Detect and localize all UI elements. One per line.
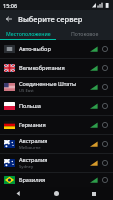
button[interactable]: Add to favourites xyxy=(101,140,109,148)
staticText: Sydney xyxy=(19,164,34,170)
button[interactable]: Recent apps xyxy=(75,187,113,200)
button[interactable]: Back xyxy=(0,10,18,28)
staticText: US East xyxy=(19,88,34,94)
staticText: Соединенные Штаты xyxy=(19,80,77,88)
button[interactable]: Польша xyxy=(0,97,113,115)
button[interactable]: Add to favourites xyxy=(101,102,109,110)
button[interactable]: Авто-выбор xyxy=(0,40,113,58)
staticText: Потоковое xyxy=(71,30,99,37)
staticText: Германия xyxy=(19,121,46,129)
staticText: Австралия xyxy=(19,137,48,145)
staticText: Выберите сервер xyxy=(18,14,83,24)
staticText: Австралия xyxy=(19,156,48,164)
button[interactable]: Add to favourites xyxy=(101,45,109,53)
staticText: Авто-выбор xyxy=(19,45,51,53)
button[interactable]: Бразилия xyxy=(0,173,113,187)
staticText: Польша xyxy=(19,102,41,110)
button[interactable]: Великобритания xyxy=(0,59,113,77)
button[interactable]: Местоположение xyxy=(0,28,56,39)
staticText: Местоположение xyxy=(6,30,51,37)
staticText: 15:06 xyxy=(3,2,18,9)
button[interactable]: Add to favourites xyxy=(101,176,109,184)
button[interactable]: Австралия xyxy=(0,154,113,172)
staticText: Великобритания xyxy=(19,64,65,72)
button[interactable]: Add to favourites xyxy=(101,121,109,129)
button[interactable]: Соединенные Штаты xyxy=(0,78,113,96)
button[interactable]: Австралия xyxy=(0,135,113,153)
staticText: Melbourne xyxy=(19,145,41,151)
button[interactable]: Add to favourites xyxy=(101,83,109,91)
button[interactable]: Home xyxy=(37,187,75,200)
button[interactable]: Back xyxy=(0,187,37,200)
button[interactable]: Add to favourites xyxy=(101,159,109,167)
button[interactable]: Add to favourites xyxy=(101,64,109,72)
staticText: Бразилия xyxy=(19,176,46,184)
button[interactable]: Потоковое xyxy=(56,28,113,39)
button[interactable]: Германия xyxy=(0,116,113,134)
